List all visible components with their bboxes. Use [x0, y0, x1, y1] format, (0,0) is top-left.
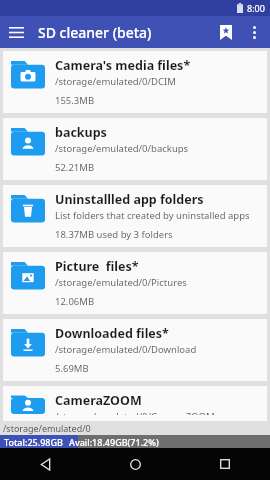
button[interactable]: backups: [3, 118, 267, 180]
button[interactable]: Picture files*: [3, 252, 267, 314]
button[interactable]: Downloaded files*: [3, 319, 267, 381]
button[interactable]: Bookmarks: [211, 17, 241, 47]
staticText: CameraZOOM: [55, 392, 142, 409]
staticText: Camera's media files*: [55, 57, 191, 74]
staticText: 8:00: [247, 2, 265, 14]
button[interactable]: Home: [90, 448, 180, 480]
button[interactable]: More options: [241, 19, 267, 45]
staticText: /storage/emulated/0/CameraZOOM: [55, 410, 215, 415]
staticText: /storage/emulated/0/Download: [55, 343, 197, 356]
staticText: Uninstallled app folders: [55, 191, 204, 208]
staticText: 155.3MB: [55, 94, 95, 107]
staticText: /storage/emulated/0/backups: [55, 142, 189, 155]
staticText: Picture files*: [55, 258, 139, 275]
staticText: 52.21MB: [55, 161, 95, 174]
staticText: 12.06MB: [55, 295, 95, 308]
staticText: SD cleaner (beta): [38, 23, 152, 42]
staticText: 5.69MB: [55, 362, 89, 375]
staticText: backups: [55, 124, 107, 141]
staticText: Avail:18.49GB(71.2%): [69, 436, 159, 448]
staticText: Downloaded files*: [55, 325, 169, 342]
staticText: /storage/emulated/0/DCIM: [55, 75, 176, 88]
button[interactable]: Open navigation drawer: [0, 16, 32, 48]
staticText: /storage/emulated/0: [3, 422, 91, 434]
staticText: 18.37MB used by 3 folders: [55, 228, 173, 241]
button[interactable]: Recent apps: [180, 448, 270, 480]
button[interactable]: CameraZOOM: [3, 386, 267, 421]
button[interactable]: Camera's media files*: [3, 51, 267, 113]
staticText: Total:25.98GB: [4, 436, 63, 448]
button[interactable]: Uninstallled app folders: [3, 185, 267, 247]
staticText: /storage/emulated/0/Pictures: [55, 276, 187, 289]
button[interactable]: Back: [0, 448, 90, 480]
staticText: List folders that created by uninstalled…: [55, 209, 250, 222]
